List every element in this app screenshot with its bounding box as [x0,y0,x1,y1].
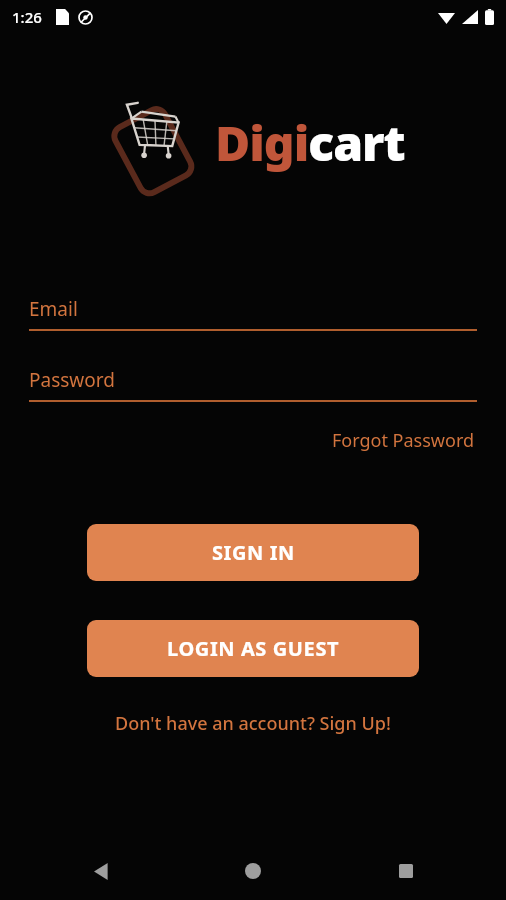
button[interactable]: Password [29,367,477,402]
button[interactable]: SIGN IN [87,524,419,581]
staticText: Forgot Password [332,428,475,453]
button[interactable]: Don't have an account? Sign Up! [111,707,395,740]
staticText: LOGIN AS GUEST [167,635,340,662]
staticText: Password [29,367,115,393]
staticText: Don't have an account? Sign Up! [115,711,391,736]
button[interactable]: Home [231,849,275,893]
staticText: Email [29,296,78,322]
button[interactable]: LOGIN AS GUEST [87,620,419,677]
button[interactable]: Recent apps [384,849,428,893]
button[interactable]: Forgot Password [330,424,477,457]
staticText: 1:26 [12,7,42,27]
button[interactable]: Email [29,296,477,331]
staticText: SIGN IN [212,539,295,566]
staticText: Digicart [215,110,405,175]
button[interactable]: Back [78,849,122,893]
